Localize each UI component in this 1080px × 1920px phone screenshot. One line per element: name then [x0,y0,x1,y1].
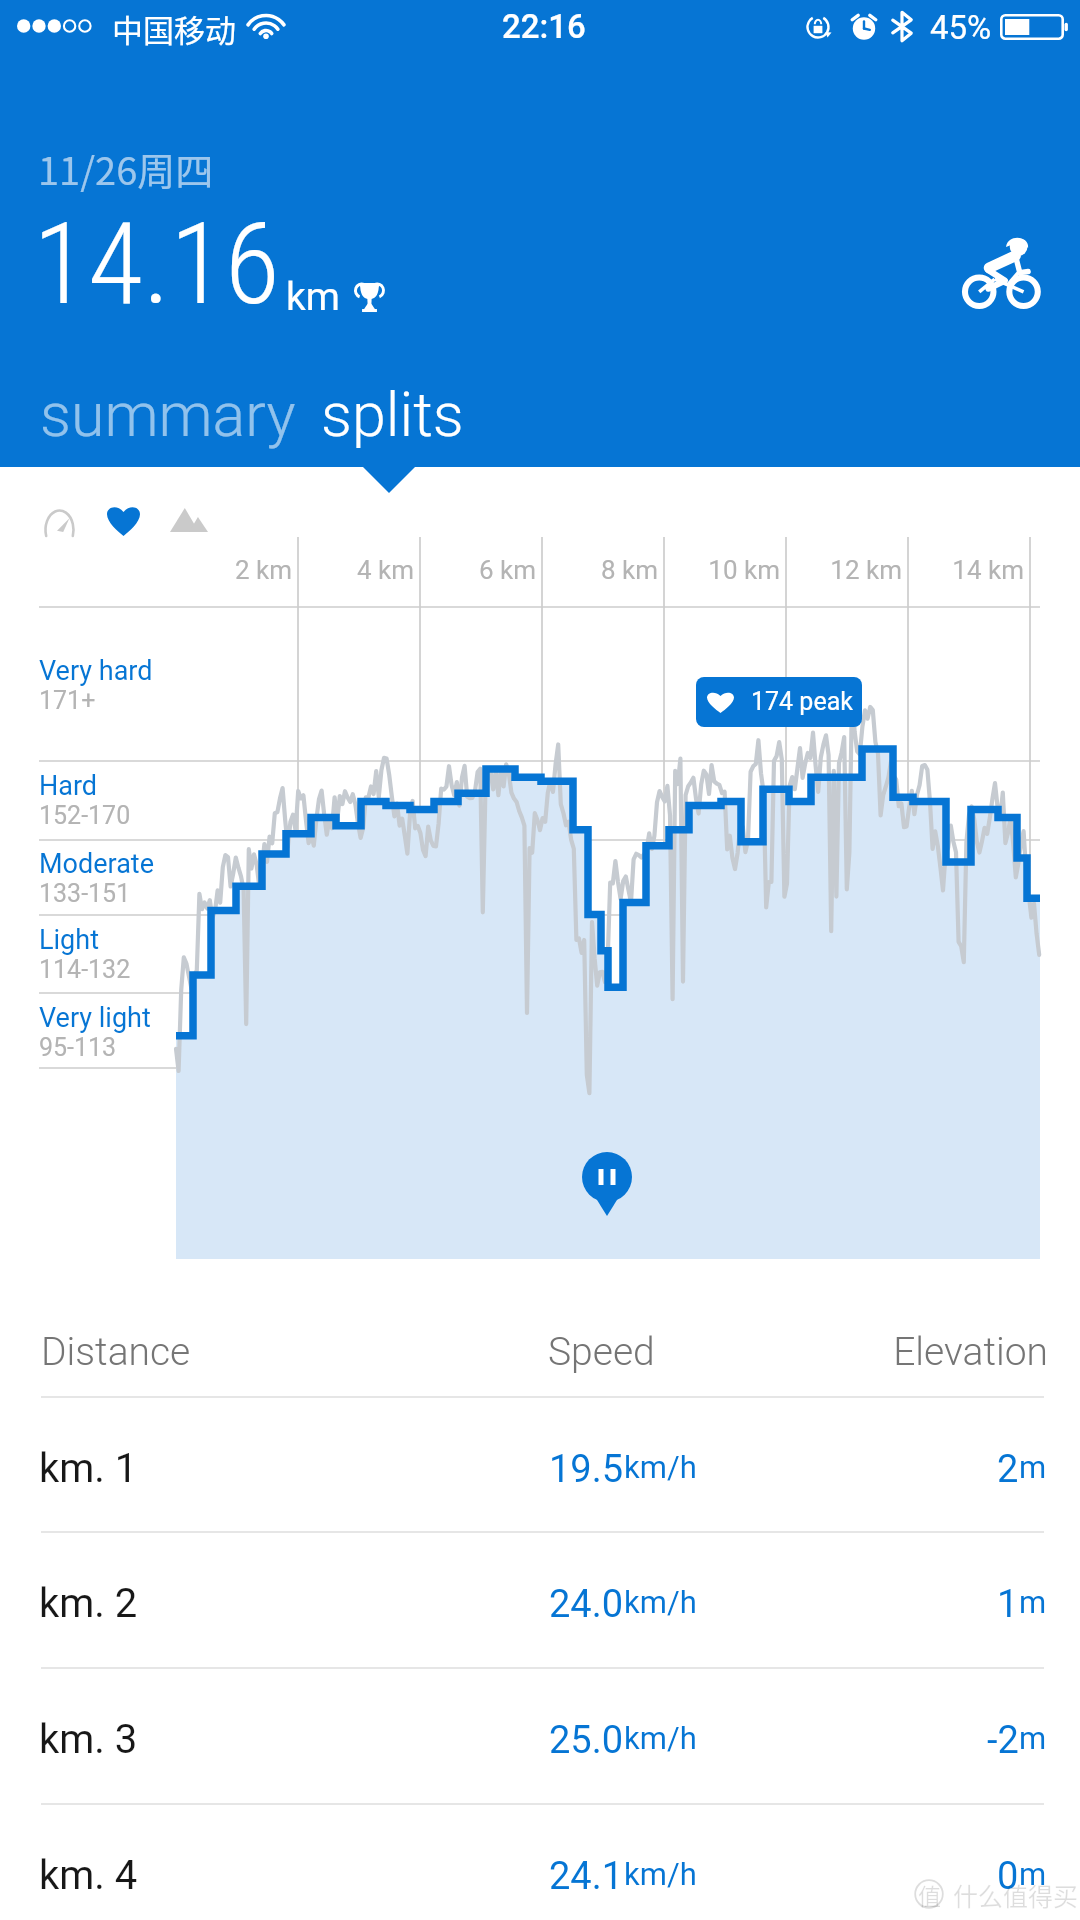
staticText: km/h [624,1720,697,1756]
staticText: 什么值得买 [953,1877,1079,1913]
button[interactable]: km. 2 [0,1532,1080,1666]
staticText: km. 1 [39,1445,138,1492]
staticText: splits [321,379,464,450]
staticText: 14.16 [33,198,280,330]
staticText: 19.5 [549,1447,624,1492]
staticText: Distance [41,1329,191,1375]
staticText: 8 km [458,555,658,585]
staticText: 1 [997,1582,1019,1627]
staticText: Hard [39,770,98,802]
staticText: km. 2 [39,1580,138,1627]
staticText: Very hard [39,655,153,687]
staticText: 中国移动 [112,6,236,51]
staticText: 22:16 [502,7,586,46]
staticText: 25.0 [549,1718,624,1763]
staticText: km [286,274,340,320]
button[interactable]: Heart rate [97,497,149,543]
staticText: 171+ [39,686,96,715]
staticText: m [1019,1584,1047,1620]
button[interactable]: Cycling activity [964,235,1039,308]
staticText: m [1019,1856,1047,1892]
staticText: 174 peak [751,687,853,716]
staticText: 10 km [580,555,780,585]
staticText: 0 [997,1854,1019,1899]
staticText: 4 km [214,555,414,585]
staticText: km. 3 [39,1716,138,1763]
staticText: 95-113 [39,1033,117,1062]
staticText: 45% [930,8,992,47]
staticText: 24.0 [549,1582,624,1627]
staticText: 2 [997,1447,1019,1492]
staticText: Light [39,924,99,956]
button[interactable]: summary [22,369,314,460]
staticText: km/h [624,1584,697,1620]
button[interactable]: Speed [33,497,85,543]
staticText: 11/26周四 [38,141,214,196]
staticText: 6 km [336,555,536,585]
staticText: -2 [987,1718,1019,1763]
staticText: m [1019,1720,1047,1756]
button[interactable]: Pause marker [582,1152,632,1216]
button[interactable]: km. 3 [0,1668,1080,1802]
staticText: 114-132 [39,955,131,984]
staticText: 12 km [702,555,902,585]
staticText: Elevation [648,1329,1048,1375]
staticText: Very light [39,1002,151,1034]
staticText: Speed [548,1329,655,1375]
staticText: km. 4 [39,1852,138,1899]
staticText: 值 [918,1878,941,1911]
staticText: m [1019,1449,1047,1485]
button[interactable]: km. 1 [0,1397,1080,1531]
staticText: 152-170 [39,801,131,830]
staticText: km/h [624,1449,697,1485]
staticText: 14 km [824,555,1024,585]
button[interactable]: 174 peak [696,677,862,727]
staticText: Moderate [39,848,154,880]
staticText: 24.1 [549,1854,624,1899]
staticText: km/h [624,1856,697,1892]
staticText: 133-151 [39,879,131,908]
button[interactable]: km. 4 [0,1804,1080,1920]
staticText: 2 km [92,555,292,585]
staticText: summary [40,379,296,450]
button[interactable]: Elevation [163,497,215,543]
button[interactable]: splits [303,369,482,460]
